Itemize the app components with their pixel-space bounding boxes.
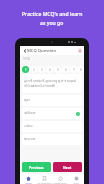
button[interactable]: Next [53,162,82,172]
button[interactable]: 4 [46,66,53,73]
button[interactable]: Leaderboard [52,174,68,184]
staticText: MCQ Question [27,48,57,54]
staticText: કુદરતી રાજધાની ગુજરાતનું શું છે તે જણાવો… [24,79,80,83]
button[interactable]: More [68,174,84,184]
staticText: Next [63,165,72,170]
staticText: 6 [65,68,67,72]
staticText: 4 [49,68,51,72]
button[interactable]: 5 [54,66,61,73]
button[interactable]: 1 [22,66,29,73]
staticText: More [73,182,79,184]
button[interactable]: 2 [30,66,37,73]
button[interactable]: 7 [70,66,77,73]
staticText: as you go [40,20,64,27]
staticText: 8 [80,68,82,72]
button[interactable]: Previous [22,162,51,172]
button[interactable]: ભાવનગર [22,134,82,145]
button[interactable]: 8 [77,66,84,73]
staticText: Home [25,182,32,184]
button[interactable]: સુરત [22,95,82,106]
button[interactable]: Home [20,174,36,184]
staticText: વડોદરા [24,125,33,128]
staticText: Previous [29,165,44,170]
button[interactable]: 3 [38,66,45,73]
staticText: 5 [57,68,59,72]
staticText: સુરત [24,99,31,102]
staticText: My Bookmark [37,182,52,184]
staticText: 1/10 [23,57,30,61]
staticText: ગાંધીનગર [24,112,36,115]
button[interactable]: My Bookmark [36,174,52,184]
staticText: નીચે આપેલ વિકલ્પોમાંથી [24,84,55,88]
button[interactable]: Bookmark [78,48,82,53]
staticText: ભાવનગર [24,138,36,141]
staticText: 3 [41,68,43,72]
button[interactable]: વડોદરા [22,121,82,132]
staticText: 1 [25,68,27,72]
staticText: 7 [73,68,75,72]
button[interactable]: Back [22,48,27,53]
staticText: 2 [33,68,35,72]
staticText: Practice MCQ's and learn [22,11,83,18]
staticText: Leaderboard [53,182,67,184]
button[interactable]: 6 [62,66,69,73]
button[interactable]: ગાંધીનગર [22,108,82,119]
